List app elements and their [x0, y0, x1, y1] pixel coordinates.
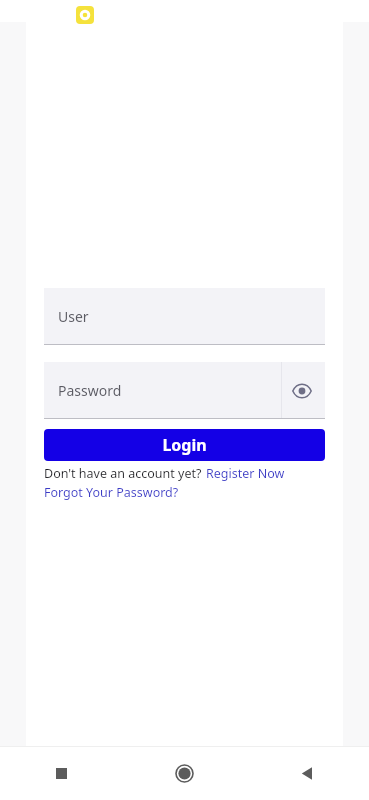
staticText: Forgot Your Password?: [44, 484, 179, 501]
staticText: Password: [58, 381, 122, 400]
button[interactable]: Recent apps: [0, 747, 123, 800]
button[interactable]: User: [44, 288, 325, 345]
button[interactable]: Login: [44, 429, 325, 461]
staticText: Register Now: [206, 465, 285, 482]
button[interactable]: Home: [123, 747, 246, 800]
other: App icon: [76, 6, 94, 24]
button[interactable]: Register Now: [206, 465, 285, 482]
button[interactable]: Show password: [287, 376, 317, 406]
staticText: Login: [162, 434, 207, 456]
staticText: User: [58, 307, 89, 326]
button[interactable]: Forgot Your Password?: [44, 484, 179, 501]
button[interactable]: Back: [246, 747, 369, 800]
staticText: Don't have an account yet?: [44, 465, 202, 482]
button[interactable]: Password: [44, 362, 325, 419]
